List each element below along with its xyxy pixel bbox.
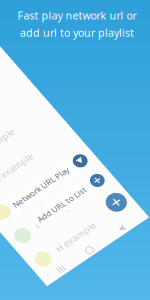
staticText: add url to your playlist xyxy=(20,25,134,40)
button[interactable]: E example xyxy=(0,208,21,239)
button[interactable]: F example xyxy=(0,239,21,270)
staticText: Fast play network url or xyxy=(17,8,136,22)
button[interactable]: D example xyxy=(0,177,21,208)
